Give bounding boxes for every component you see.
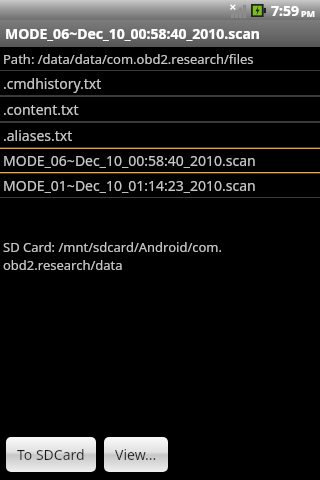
staticText: To SDCard [17, 445, 85, 464]
staticText: View... [115, 445, 157, 464]
button[interactable]: .cmdhistory.txt [0, 70, 320, 96]
staticText: MODE_01~Dec_10_01:14:23_2010.scan [3, 176, 256, 195]
staticText: 7:59 [271, 1, 299, 20]
staticText: .content.txt [3, 100, 79, 119]
button[interactable]: View... [104, 437, 168, 472]
button[interactable]: To SDCard [6, 437, 96, 472]
staticText: MODE_06~Dec_10_00:58:40_2010.scan [3, 151, 256, 170]
button[interactable]: MODE_01~Dec_10_01:14:23_2010.scan [0, 173, 320, 198]
staticText: MODE_06~Dec_10_00:58:40_2010.scan [5, 24, 260, 43]
button[interactable]: MODE_06~Dec_10_00:58:40_2010.scan [0, 148, 320, 173]
staticText: Path: /data/data/com.obd2.research/files [3, 50, 254, 68]
staticText: .aliases.txt [3, 126, 73, 145]
staticText: SD Card: /mnt/sdcard/Android/com. [3, 238, 222, 256]
button[interactable]: .aliases.txt [0, 122, 320, 148]
staticText: obd2.research/data [3, 256, 123, 274]
button[interactable]: Path: /data/data/com.obd2.research/files [0, 47, 320, 70]
button[interactable]: .content.txt [0, 96, 320, 122]
staticText: PM [301, 7, 316, 19]
staticText: .cmdhistory.txt [3, 74, 102, 93]
